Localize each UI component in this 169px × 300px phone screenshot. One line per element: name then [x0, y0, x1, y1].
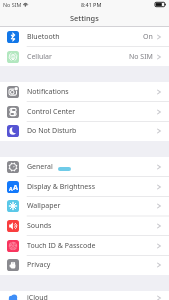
button[interactable]: Privacy	[0, 255, 169, 275]
button[interactable]: Control Center	[0, 102, 169, 122]
staticText: Do Not Disturb	[27, 126, 77, 136]
button[interactable]: Sounds	[0, 216, 169, 236]
staticText: Touch ID & Passcode	[27, 241, 96, 251]
button[interactable]: Cellular	[0, 47, 169, 67]
staticText: A	[13, 182, 18, 192]
staticText: Bluetooth	[27, 32, 60, 42]
staticText: Sounds	[27, 221, 52, 231]
button[interactable]: Do Not Disturb	[0, 121, 169, 141]
staticText: A	[9, 185, 13, 192]
button[interactable]: Touch ID & Passcode	[0, 236, 169, 256]
staticText: No SIM	[3, 1, 22, 8]
button[interactable]: Notifications	[0, 82, 169, 102]
staticText: No SIM	[129, 52, 153, 62]
staticText: Privacy	[27, 260, 51, 270]
staticText: Display & Brightness	[27, 182, 96, 192]
staticText: General	[27, 162, 53, 172]
button[interactable]: General	[0, 157, 169, 177]
staticText: Settings	[70, 13, 99, 23]
button[interactable]: Bluetooth	[0, 27, 169, 47]
button[interactable]: Wallpaper	[0, 196, 169, 216]
staticText: Cellular	[27, 52, 52, 62]
staticText: iCloud	[27, 293, 48, 300]
button[interactable]: iCloud	[0, 291, 169, 300]
staticText: Control Center	[27, 107, 76, 117]
staticText: Wallpaper	[27, 201, 61, 211]
staticText: Notifications	[27, 87, 69, 97]
staticText: On	[143, 32, 153, 42]
button[interactable]: A	[0, 177, 169, 197]
staticText: 8:41 PM	[81, 1, 102, 8]
